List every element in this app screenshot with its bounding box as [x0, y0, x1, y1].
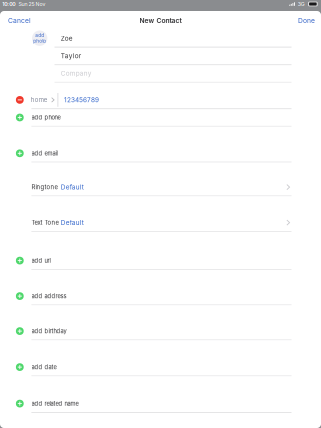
staticText: Company	[61, 70, 92, 77]
staticText: Default	[61, 183, 84, 191]
button[interactable]: add email	[0, 145, 321, 162]
button[interactable]: Add photo	[32, 30, 48, 46]
staticText: Zoe	[61, 34, 73, 42]
staticText: add email	[31, 150, 57, 157]
button[interactable]: Text Tone	[0, 214, 321, 231]
staticText: home	[31, 96, 47, 104]
button[interactable]: add phone	[0, 109, 321, 126]
button[interactable]: Ringtone	[0, 179, 321, 195]
button[interactable]: add url	[0, 252, 321, 269]
staticText: 3G	[298, 1, 305, 7]
staticText: add related name	[31, 400, 78, 407]
staticText: Cancel	[8, 16, 31, 24]
staticText: add url	[31, 257, 50, 264]
staticText: Sun 25 Nov	[18, 1, 45, 7]
button[interactable]: home	[0, 91, 321, 108]
staticText: Text Tone	[31, 219, 58, 226]
staticText: 10:00	[2, 1, 15, 7]
staticText: New Contact	[139, 16, 181, 24]
staticText: Ringtone	[31, 183, 57, 191]
staticText: Done	[298, 16, 315, 24]
staticText: add	[35, 33, 44, 38]
staticText: add phone	[31, 114, 60, 121]
button[interactable]: Done	[292, 12, 321, 28]
staticText: add address	[31, 293, 66, 299]
staticText: add date	[31, 364, 56, 370]
staticText: Taylor	[61, 52, 81, 60]
staticText: 123456789	[64, 96, 99, 104]
button[interactable]: add birthday	[0, 323, 321, 339]
button[interactable]: Cancel	[0, 12, 39, 28]
button[interactable]: add date	[0, 359, 321, 375]
button[interactable]: add address	[0, 288, 321, 304]
button[interactable]: add related name	[0, 395, 321, 412]
staticText: add birthday	[31, 328, 66, 334]
staticText: Default	[61, 219, 84, 226]
staticText: photo	[33, 38, 46, 44]
